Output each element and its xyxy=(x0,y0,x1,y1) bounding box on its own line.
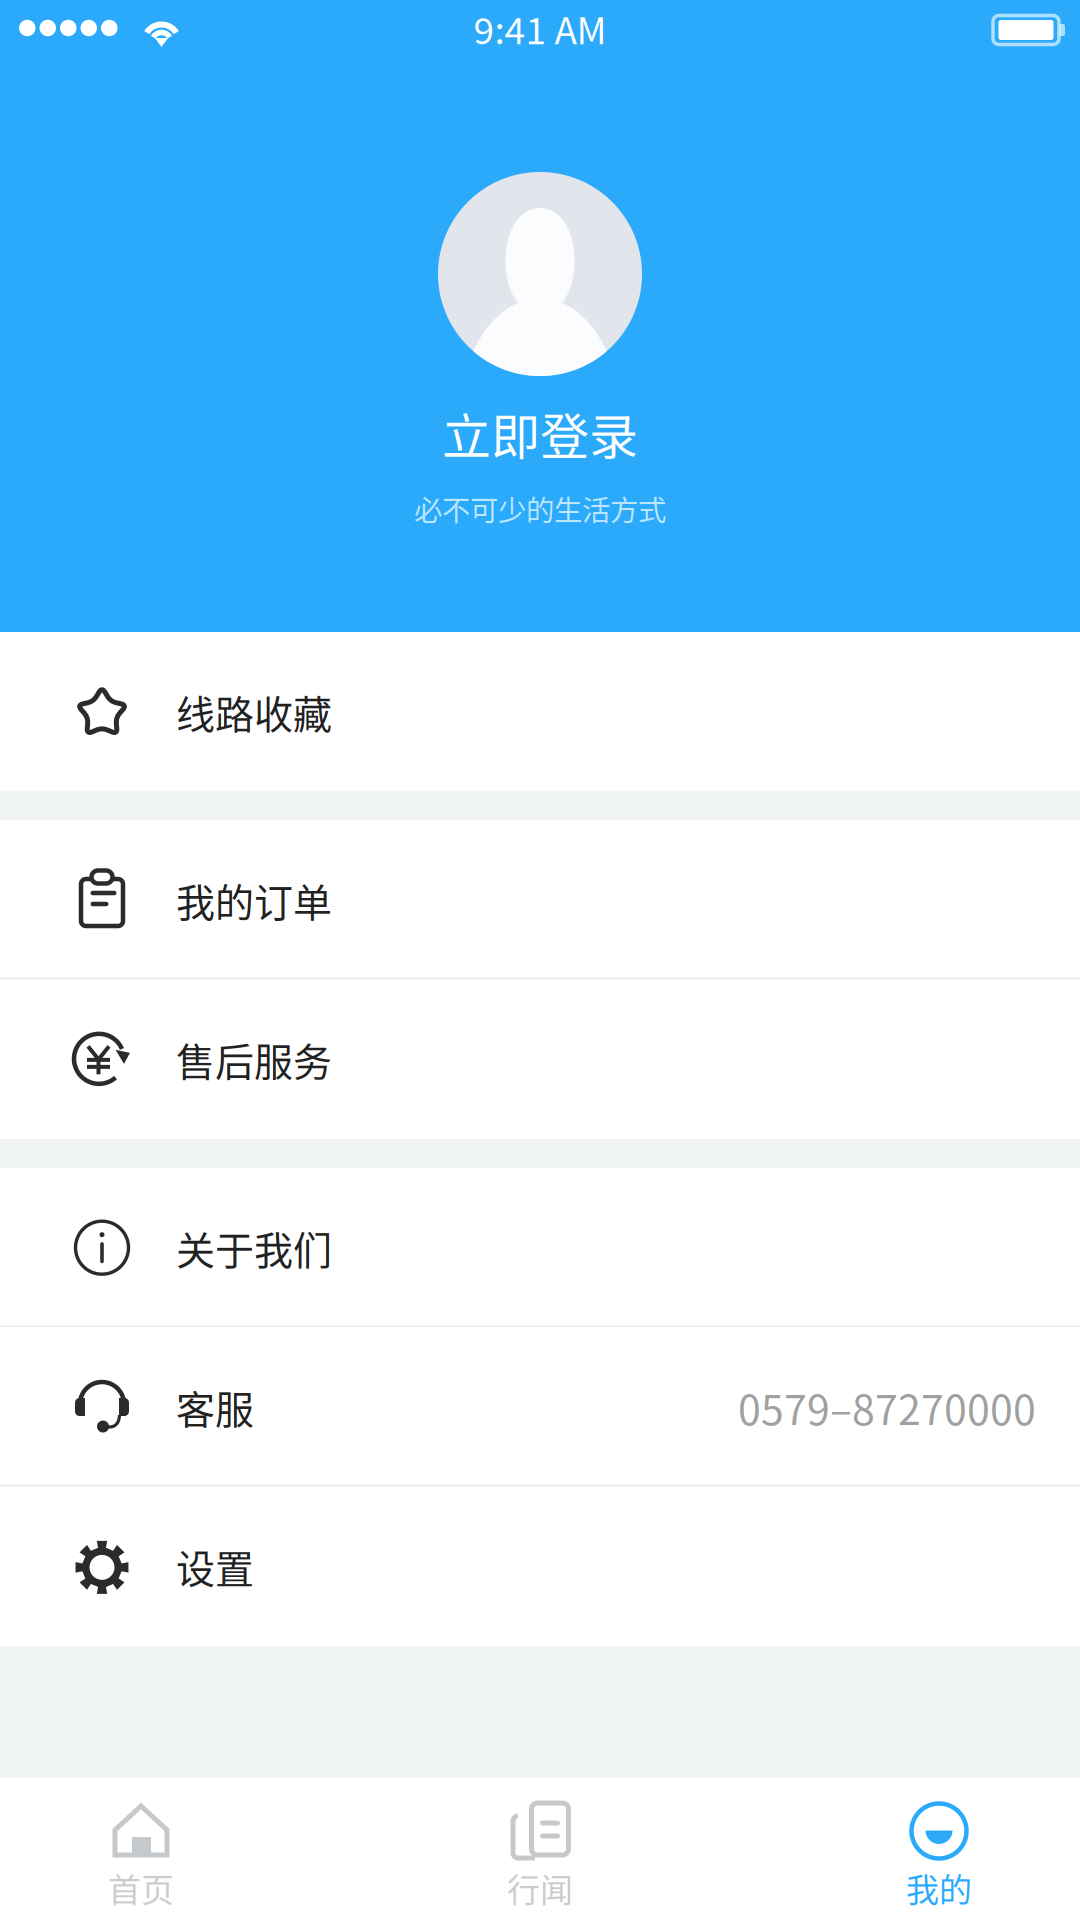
button[interactable]: 我的订单 xyxy=(0,820,1080,980)
button[interactable]: 线路收藏 xyxy=(0,632,1080,791)
staticText: 客服 xyxy=(176,1379,254,1435)
button[interactable]: 售后服务 xyxy=(0,980,1080,1139)
staticText: 线路收藏 xyxy=(176,683,332,740)
staticText: 关于我们 xyxy=(176,1219,332,1276)
button[interactable]: 客服 xyxy=(0,1327,1080,1487)
staticText: 行闻 xyxy=(507,1864,573,1912)
staticText: 我的订单 xyxy=(176,872,332,928)
button[interactable]: 首页 xyxy=(0,1778,282,1920)
button[interactable]: 设置 xyxy=(0,1487,1080,1646)
staticText: 设置 xyxy=(176,1538,254,1595)
button[interactable]: 我的 xyxy=(798,1778,1080,1920)
staticText: 0579–87270000 xyxy=(738,1377,1036,1437)
button[interactable]: 行闻 xyxy=(282,1778,798,1920)
button[interactable]: 立即登录 xyxy=(0,398,1080,529)
staticText: 首页 xyxy=(108,1864,174,1912)
staticText: 我的 xyxy=(906,1864,972,1912)
staticText: 售后服务 xyxy=(176,1031,332,1088)
staticText: 必不可少的生活方式 xyxy=(414,488,666,529)
staticText: 9:41 AM xyxy=(473,1,606,55)
staticText: 立即登录 xyxy=(442,398,638,469)
button[interactable]: 关于我们 xyxy=(0,1168,1080,1327)
